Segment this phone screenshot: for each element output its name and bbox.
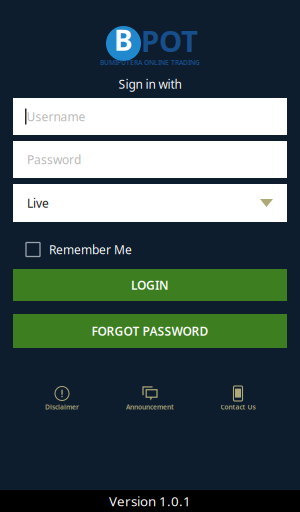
staticText: Disclaimer [45, 403, 79, 411]
staticText: Remember Me [49, 241, 132, 257]
staticText: Password [27, 151, 81, 167]
staticText: Live [27, 195, 49, 211]
staticText: LOGIN [131, 277, 169, 293]
button[interactable]: Announcement [106, 386, 194, 411]
staticText: Contact Us [220, 403, 255, 411]
staticText: Version 1.0.1 [109, 492, 191, 510]
button[interactable]: Disclaimer [18, 386, 106, 411]
staticText: Sign in with [118, 76, 181, 92]
staticText: Announcement [126, 403, 174, 411]
button[interactable]: Contact Us [194, 386, 282, 411]
staticText: Username [26, 108, 85, 124]
staticText: FORGOT PASSWORD [91, 323, 208, 339]
staticText: B [114, 21, 133, 59]
staticText: POT [141, 21, 198, 60]
button[interactable]: FORGOT PASSWORD [13, 314, 287, 348]
button[interactable]: Live [13, 184, 287, 222]
button[interactable]: LOGIN [13, 269, 287, 301]
staticText: BUMIPUTERA ONLINE TRADING [100, 58, 200, 67]
button[interactable]: Remember Me [0, 236, 300, 263]
